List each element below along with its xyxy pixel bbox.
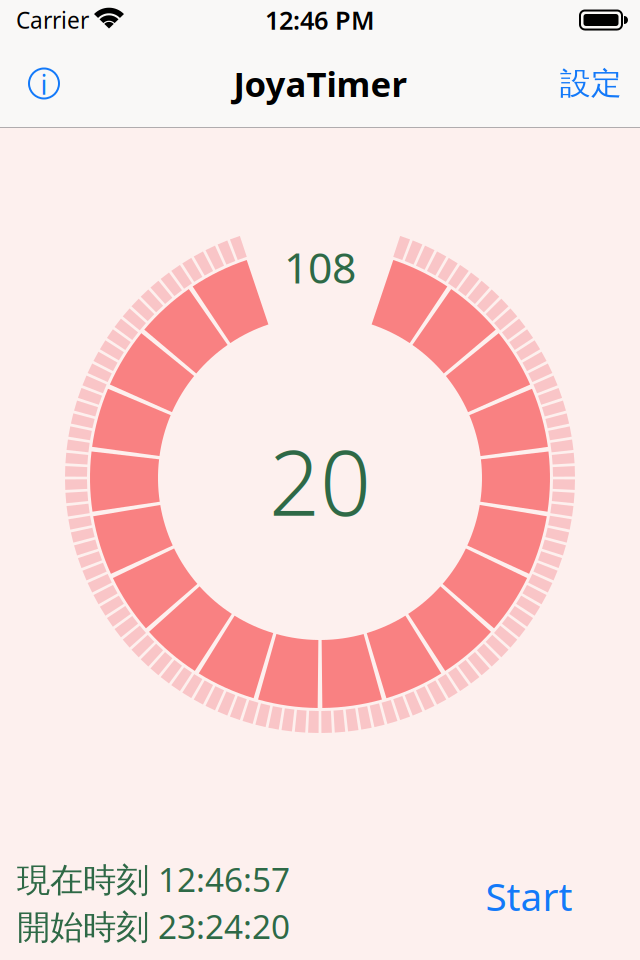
staticText: i <box>40 67 47 102</box>
staticText: Carrier <box>16 5 89 35</box>
button[interactable]: Start <box>454 866 604 926</box>
staticText: 12:46 PM <box>265 3 375 37</box>
staticText: 20 <box>269 422 371 540</box>
staticText: Start <box>485 870 572 922</box>
staticText: 108 <box>284 239 356 295</box>
button[interactable]: 設定 <box>560 65 640 102</box>
staticText: 設定 <box>560 65 622 102</box>
button[interactable]: Info <box>16 55 72 111</box>
staticText: 現在時刻 12:46:57 <box>17 857 290 901</box>
staticText: JoyaTimer <box>233 60 406 106</box>
staticText: 開始時刻 23:24:20 <box>17 904 290 948</box>
